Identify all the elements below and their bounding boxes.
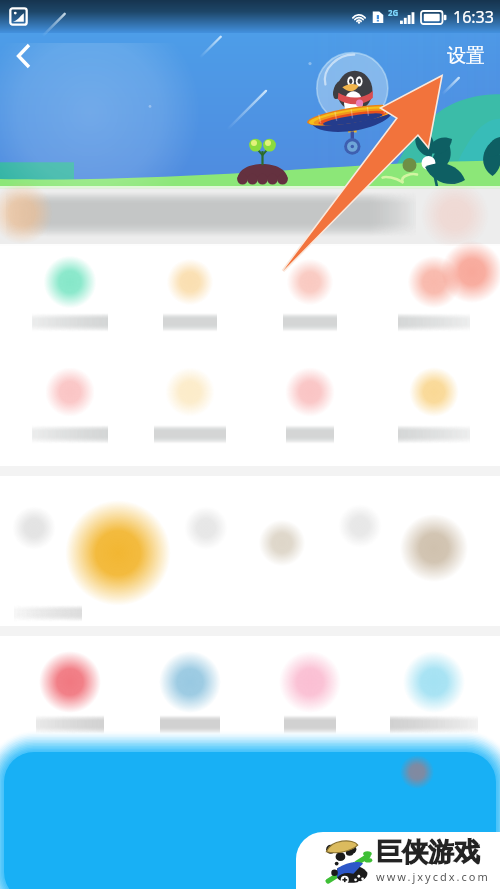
staticText: 巨侠游戏 (376, 836, 480, 869)
button[interactable]: 设置 (432, 36, 500, 76)
staticText: 设置 (447, 44, 485, 68)
staticText: 2G (388, 7, 399, 18)
staticText: 16:33 (453, 6, 494, 28)
staticText: www.jxycdx.com (376, 869, 490, 884)
button[interactable]: Back (0, 33, 46, 78)
